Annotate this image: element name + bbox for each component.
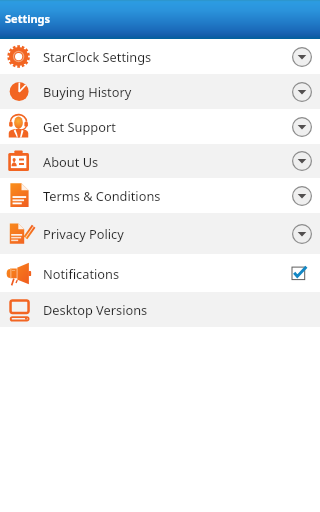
staticText: Notifications — [43, 265, 120, 282]
button[interactable]: Privacy Policy — [0, 213, 320, 254]
button[interactable]: Settings — [0, 0, 320, 39]
button[interactable]: StarClock Settings — [0, 39, 320, 74]
button[interactable]: Buying History — [0, 74, 320, 109]
button[interactable]: Desktop Versions — [0, 292, 320, 327]
staticText: Privacy Policy — [43, 225, 124, 242]
button[interactable]: Expand — [292, 151, 312, 171]
button[interactable]: About Us — [0, 144, 320, 178]
staticText: StarClock Settings — [43, 48, 152, 65]
button[interactable]: Terms & Conditions — [0, 178, 320, 213]
staticText: Terms & Conditions — [43, 187, 161, 204]
button[interactable]: Expand — [292, 224, 312, 244]
staticText: Buying History — [43, 83, 132, 100]
button[interactable]: Expand — [292, 186, 312, 206]
staticText: Settings — [5, 11, 51, 26]
button[interactable]: Notifications enabled — [292, 264, 310, 282]
staticText: Desktop Versions — [43, 301, 148, 318]
button[interactable]: Expand — [292, 47, 312, 67]
staticText: About Us — [43, 153, 99, 170]
staticText: Get Support — [43, 118, 116, 135]
button[interactable]: Notifications — [0, 254, 320, 292]
button[interactable]: Expand — [292, 82, 312, 102]
button[interactable]: Expand — [292, 117, 312, 137]
button[interactable]: Get Support — [0, 109, 320, 144]
